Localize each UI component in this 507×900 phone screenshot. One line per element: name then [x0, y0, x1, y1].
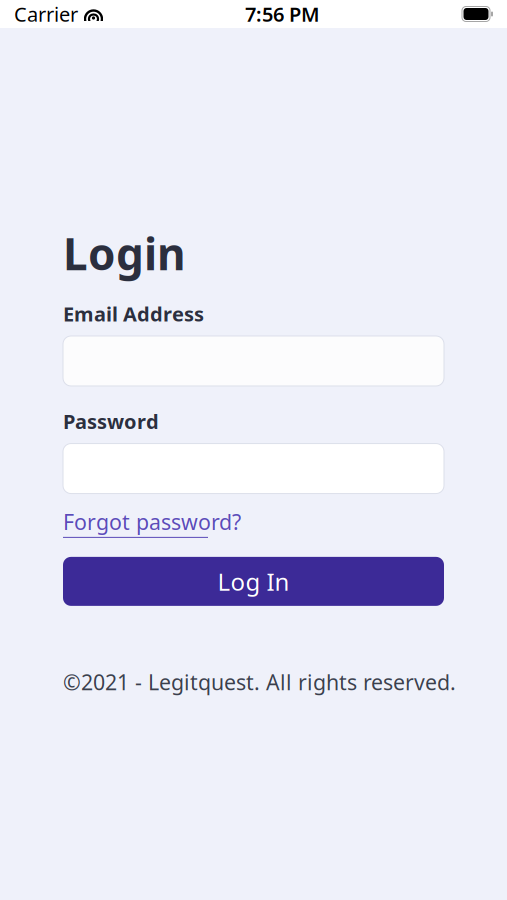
staticText: 7:56 PM — [245, 1, 320, 27]
staticText: Password — [63, 408, 159, 435]
staticText: Log In — [217, 565, 289, 597]
button[interactable]: Log In — [63, 557, 444, 606]
staticText: ©2021 - Legitquest. All rights reserved. — [63, 668, 456, 696]
staticText: Carrier — [14, 1, 78, 27]
staticText: Login — [63, 224, 186, 282]
staticText: Forgot password? — [63, 507, 241, 536]
staticText: Email Address — [63, 300, 204, 327]
button[interactable]: Forgot password? — [63, 507, 241, 538]
